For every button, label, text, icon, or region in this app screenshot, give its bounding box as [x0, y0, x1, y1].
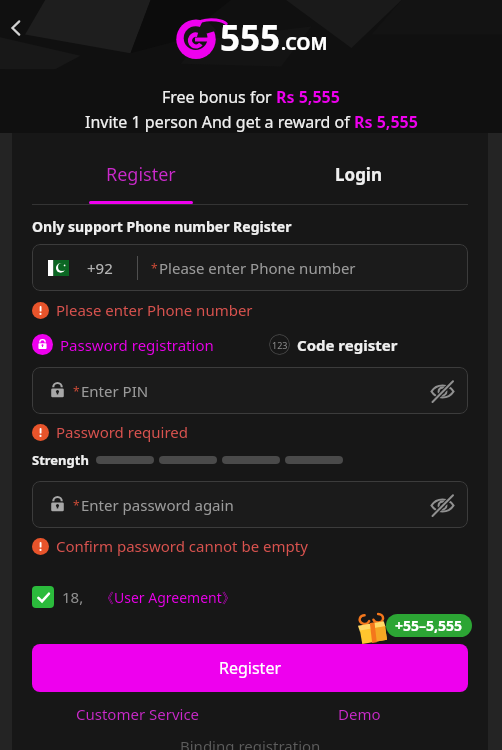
staticText: Please enter Phone number — [56, 300, 253, 320]
staticText: Invite 1 person And get a reward of — [85, 111, 354, 133]
button[interactable]: * — [32, 481, 468, 528]
staticText: Binding registration — [180, 736, 321, 750]
button[interactable]: Password registration — [32, 334, 214, 355]
staticText: Demo — [338, 704, 381, 724]
button[interactable]: 18, — [32, 586, 236, 608]
button[interactable]: +92 — [32, 244, 468, 291]
button[interactable]: Show password — [424, 487, 460, 523]
staticText: .COM — [281, 31, 328, 56]
staticText: Enter PIN — [81, 381, 149, 401]
staticText: Strength — [32, 451, 89, 469]
staticText: +55–5,555 — [395, 616, 463, 635]
button[interactable]: Register — [32, 644, 468, 692]
staticText: Rs 5,555 — [276, 86, 340, 108]
staticText: Please enter Phone number — [159, 258, 356, 278]
staticText: Register — [219, 657, 282, 679]
staticText: Enter password again — [81, 495, 234, 515]
staticText: Only support Phone number Register — [32, 217, 292, 236]
staticText: Rs 5,555 — [354, 111, 418, 133]
staticText: Password required — [56, 422, 189, 442]
staticText: Login — [335, 163, 383, 186]
staticText: * — [151, 260, 158, 276]
button[interactable]: Customer Service — [76, 704, 200, 724]
button[interactable]: Show password — [424, 373, 460, 409]
button[interactable]: 123 — [269, 334, 398, 355]
button[interactable]: Login — [250, 133, 468, 205]
staticText: 18, — [62, 587, 84, 607]
staticText: 《User Agreement》 — [100, 588, 236, 607]
button[interactable]: Back — [0, 12, 32, 44]
staticText: +92 — [87, 258, 113, 278]
staticText: Code register — [297, 335, 398, 355]
staticText: 123 — [272, 339, 288, 351]
button[interactable]: Demo — [338, 704, 381, 724]
staticText: Customer Service — [76, 704, 200, 724]
staticText: * — [73, 497, 80, 513]
staticText: Free bonus for — [162, 86, 276, 108]
staticText: 555 — [220, 14, 281, 62]
staticText: * — [73, 383, 80, 399]
staticText: Register — [106, 162, 176, 187]
button[interactable]: * — [32, 367, 468, 414]
button[interactable]: Register — [32, 133, 250, 205]
staticText: Confirm password cannot be empty — [56, 536, 308, 556]
staticText: Password registration — [60, 335, 214, 355]
